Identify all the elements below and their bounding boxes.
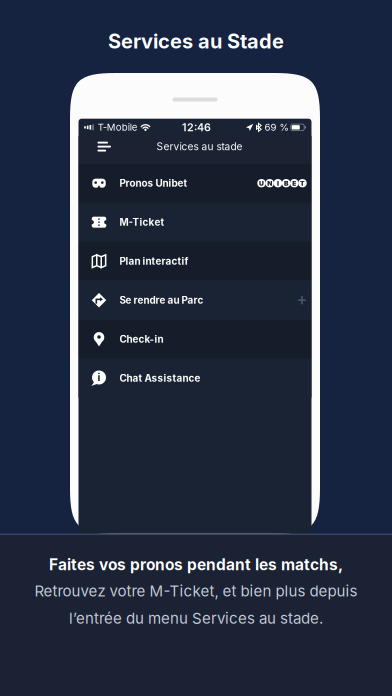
staticText: l’entrée du menu Services au stade.	[69, 609, 323, 627]
staticText: Services au Stade	[108, 29, 284, 53]
button[interactable]: M-Ticket	[78, 203, 311, 242]
staticText: Pronos Unibet	[119, 177, 187, 189]
staticText: 12:46	[182, 121, 211, 134]
staticText: U	[259, 179, 264, 187]
staticText: T	[300, 179, 305, 187]
staticText: E	[292, 179, 296, 187]
staticText: Check-in	[119, 333, 163, 345]
button[interactable]: i	[78, 359, 311, 398]
button[interactable]: Plan interactif	[78, 242, 311, 281]
staticText: 69 %	[265, 121, 289, 133]
button[interactable]: Menu	[78, 136, 121, 158]
staticText: Services au stade	[156, 140, 242, 153]
staticText: i	[98, 371, 101, 384]
staticText: B	[284, 179, 288, 187]
button[interactable]: Pronos Unibet	[78, 164, 311, 203]
button[interactable]: Check-in	[78, 320, 311, 359]
staticText: N	[267, 179, 272, 187]
staticText: Chat Assistance	[119, 372, 200, 384]
staticText: Se rendre au Parc	[119, 294, 203, 306]
staticText: Retrouvez votre M-Ticket, et bien plus d…	[34, 582, 357, 600]
staticText: M-Ticket	[119, 216, 164, 228]
staticText: Faites vos pronos pendant les matchs,	[49, 555, 343, 574]
staticText: I	[277, 179, 279, 187]
button[interactable]: Se rendre au Parc	[78, 281, 311, 320]
staticText: T-Mobile	[98, 121, 138, 133]
staticText: Plan interactif	[119, 255, 188, 267]
